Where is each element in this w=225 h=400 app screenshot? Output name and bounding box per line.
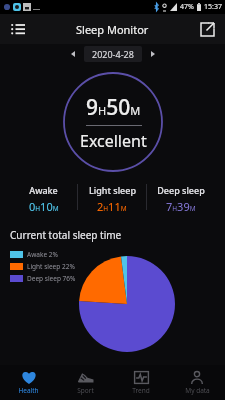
staticText: Sport <box>77 386 94 395</box>
staticText: 9H50M <box>86 93 141 122</box>
staticText: Deep sleep 76% <box>27 274 76 283</box>
button[interactable]: 2020-4-28 <box>84 46 142 62</box>
staticText: My data <box>185 386 210 395</box>
button[interactable]: Next day <box>146 47 160 61</box>
staticText: Trend <box>132 386 150 395</box>
button[interactable]: Sport <box>57 365 113 400</box>
button[interactable]: Menu <box>6 17 30 41</box>
staticText: 2H11M <box>97 199 127 214</box>
button[interactable]: Light sleep <box>78 184 146 214</box>
staticText: Current total sleep time <box>10 228 122 242</box>
staticText: Deep sleep <box>157 184 205 196</box>
button[interactable]: Previous day <box>66 47 80 61</box>
staticText: Sleep Monitor <box>76 22 149 37</box>
staticText: Awake 2% <box>27 250 58 259</box>
button[interactable]: Trend <box>113 365 169 400</box>
button[interactable]: Awake <box>10 184 77 214</box>
staticText: 15:37 <box>204 2 222 12</box>
staticText: Awake <box>29 184 58 196</box>
staticText: Light sleep <box>89 184 136 196</box>
button[interactable]: Deep sleep <box>147 184 215 214</box>
button[interactable]: Health <box>0 365 57 400</box>
button[interactable]: Share <box>195 17 219 41</box>
staticText: Excellent <box>80 130 147 152</box>
staticText: 7H39M <box>166 199 196 214</box>
staticText: Light sleep 22% <box>27 262 75 271</box>
staticText: Health <box>18 386 39 395</box>
staticText: 2020-4-28 <box>92 48 134 60</box>
staticText: 0H10M <box>29 199 59 214</box>
staticText: 47% <box>180 2 194 12</box>
button[interactable]: My data <box>169 365 225 400</box>
